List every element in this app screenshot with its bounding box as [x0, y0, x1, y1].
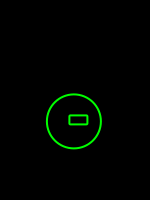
button[interactable]: Stop: [47, 94, 101, 148]
